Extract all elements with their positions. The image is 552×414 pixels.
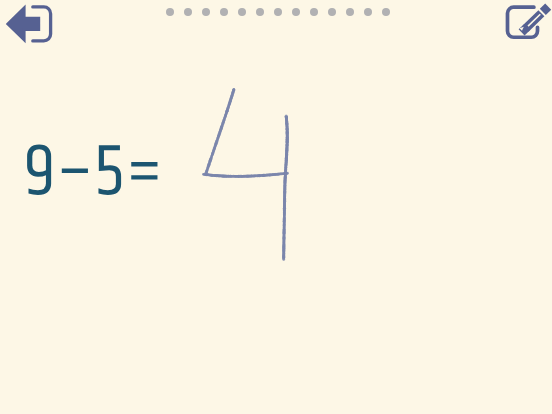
button[interactable]: Edit (496, 0, 552, 48)
button[interactable]: Back (0, 0, 58, 48)
